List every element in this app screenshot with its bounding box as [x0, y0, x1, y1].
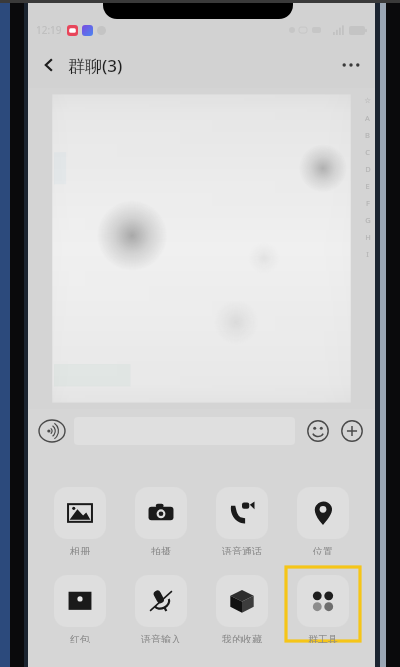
staticText: ☆ — [364, 96, 371, 113]
button[interactable]: Voice message — [36, 415, 68, 447]
staticText: 语音通话 — [222, 545, 262, 555]
button[interactable]: 位置 — [284, 479, 362, 555]
staticText: I — [366, 249, 369, 266]
button[interactable]: 群工具 — [284, 567, 362, 643]
staticText: F — [366, 198, 370, 215]
button[interactable]: 拍摄 — [122, 479, 200, 555]
staticText: G — [365, 215, 371, 232]
staticText: 12:19 — [36, 23, 62, 37]
button[interactable]: 语音输入 — [122, 567, 200, 643]
staticText: 群工具 — [308, 633, 338, 643]
button[interactable]: 相册 — [41, 479, 119, 555]
staticText: B — [365, 130, 370, 147]
staticText: 语音输入 — [141, 633, 181, 643]
staticText: E — [365, 181, 370, 198]
staticText: 位置 — [313, 545, 333, 555]
staticText: H — [365, 232, 371, 249]
staticText: 拍摄 — [151, 545, 171, 555]
staticText: A — [365, 113, 370, 130]
staticText: 我的收藏 — [222, 633, 262, 643]
button[interactable]: Back — [32, 48, 66, 82]
staticText: 红包 — [70, 633, 90, 643]
staticText: 相册 — [70, 545, 90, 555]
button[interactable]: 语音通话 — [203, 479, 281, 555]
staticText: C — [365, 147, 370, 164]
button[interactable]: More functions — [337, 416, 367, 446]
button[interactable]: 我的收藏 — [203, 567, 281, 643]
staticText: 群聊(3) — [68, 54, 123, 77]
staticText: D — [365, 164, 371, 181]
button[interactable]: Emoji — [303, 416, 333, 446]
button[interactable]: 红包 — [41, 567, 119, 643]
button[interactable]: More options — [333, 47, 369, 83]
